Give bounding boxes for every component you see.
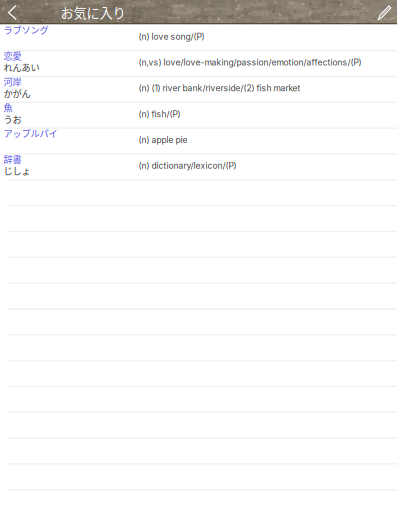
staticText: 恋愛 (3, 49, 21, 62)
button[interactable]: 辞書 (0, 154, 397, 179)
staticText: 河岸 (3, 75, 21, 88)
staticText: れんあい (3, 61, 39, 74)
staticText: かがん (3, 86, 30, 100)
staticText: 辞書 (3, 152, 21, 165)
staticText: うお (3, 112, 21, 126)
staticText: (n) dictionary/lexicon/(P) (138, 160, 236, 171)
button[interactable]: ラブソング (0, 25, 397, 50)
staticText: (n) (1) river bank/riverside/(2) fish ma… (138, 83, 300, 93)
staticText: お気に入り (60, 3, 125, 22)
staticText: (n,vs) love/love-making/passion/emotion/… (138, 57, 361, 67)
staticText: 魚 (3, 101, 12, 114)
staticText: ラブソング (3, 23, 48, 36)
button[interactable]: 魚 (0, 102, 397, 128)
button[interactable]: 恋愛 (0, 50, 397, 76)
staticText: (n) apple pie (138, 135, 187, 145)
staticText: じしょ (3, 164, 30, 177)
button[interactable]: 河岸 (0, 76, 397, 102)
staticText: (n) love song/(P) (138, 31, 204, 42)
button[interactable]: Back (0, 0, 28, 25)
staticText: (n) fish/(P) (138, 109, 180, 119)
button[interactable]: Edit (371, 0, 397, 25)
staticText: アップルパイ (3, 126, 57, 140)
button[interactable]: アップルパイ (0, 128, 397, 154)
